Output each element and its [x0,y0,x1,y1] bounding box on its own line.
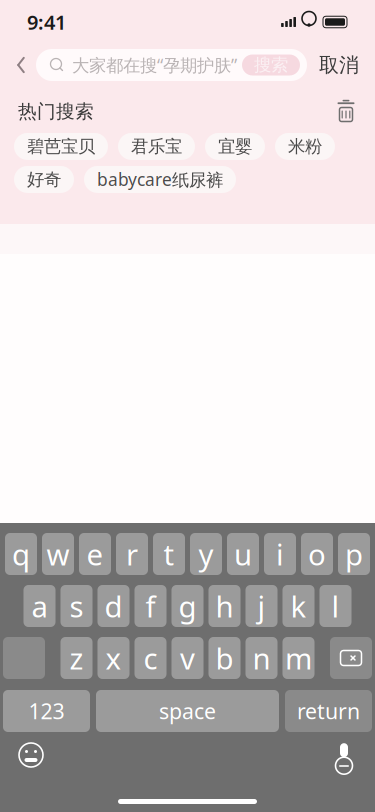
staticText: 热门搜索 [18,100,94,123]
staticText: i [276,534,284,573]
staticText: x [105,638,121,677]
staticText: return [297,697,360,725]
staticText: space [159,697,216,725]
staticText: t [163,534,174,573]
staticText: 搜索 [254,54,288,76]
staticText: o [308,534,326,573]
button[interactable]: Back [6,48,36,82]
button[interactable]: 米粉 [275,133,335,160]
staticText: z [69,638,83,677]
staticText: 9:41 [27,9,66,35]
staticText: 取消 [319,53,359,77]
button[interactable]: h [208,585,240,627]
button[interactable]: b [208,637,240,679]
staticText: h [215,586,233,625]
staticText: q [12,534,30,573]
staticText: l [331,586,339,625]
staticText: g [178,586,196,625]
button[interactable]: c [134,637,166,679]
button[interactable]: r [116,533,148,575]
button[interactable]: Delete [330,637,372,679]
button[interactable]: 碧芭宝贝 [14,133,108,160]
button[interactable]: g [171,585,203,627]
button[interactable]: Emoji [14,738,48,772]
button[interactable]: n [245,637,277,679]
staticText: v [180,638,195,677]
staticText: 好奇 [27,169,61,190]
staticText: n [252,638,270,677]
staticText: r [126,534,138,573]
button[interactable]: 搜索 [242,54,300,75]
staticText: u [234,534,252,573]
button[interactable]: 君乐宝 [118,133,195,160]
button[interactable]: w [42,533,74,575]
button[interactable]: k [282,585,314,627]
button[interactable]: 123 [3,690,90,732]
button[interactable]: Dictate [327,738,361,772]
staticText: k [290,586,306,625]
staticText: b [215,638,233,677]
button[interactable]: p [338,533,370,575]
staticText: w [46,534,69,573]
button[interactable]: z [60,637,92,679]
button[interactable]: 取消 [311,48,367,82]
button[interactable]: t [153,533,185,575]
button[interactable]: 宜婴 [205,133,265,160]
staticText: 宜婴 [218,136,252,157]
button[interactable]: space [96,690,279,732]
button[interactable]: e [79,533,111,575]
button[interactable]: babycare纸尿裤 [84,166,236,193]
button[interactable]: j [245,585,277,627]
button[interactable]: o [301,533,333,575]
button[interactable]: x [97,637,129,679]
button[interactable]: u [227,533,259,575]
button[interactable]: return [285,690,372,732]
staticText: 大家都在搜“孕期护肤” [72,53,237,76]
button[interactable]: s [60,585,92,627]
button[interactable]: l [319,585,351,627]
button[interactable]: q [5,533,37,575]
staticText: e [86,534,103,573]
staticText: y [198,534,213,573]
button[interactable]: i [264,533,296,575]
staticText: f [145,586,155,625]
staticText: 123 [28,697,64,725]
button[interactable]: Clear history [335,100,357,122]
staticText: s [69,586,83,625]
staticText: babycare纸尿裤 [97,168,223,191]
button[interactable]: a [23,585,55,627]
button[interactable]: m [282,637,314,679]
staticText: 碧芭宝贝 [27,136,95,157]
button[interactable]: f [134,585,166,627]
button[interactable]: d [97,585,129,627]
staticText: d [104,586,122,625]
staticText: p [345,534,363,573]
staticText: c [143,638,157,677]
staticText: m [285,638,312,677]
button[interactable]: v [171,637,203,679]
staticText: 米粉 [288,136,322,157]
button[interactable]: 好奇 [14,166,74,193]
staticText: j [257,586,265,625]
staticText: 君乐宝 [131,136,182,157]
button[interactable]: y [190,533,222,575]
staticText: a [31,586,47,625]
